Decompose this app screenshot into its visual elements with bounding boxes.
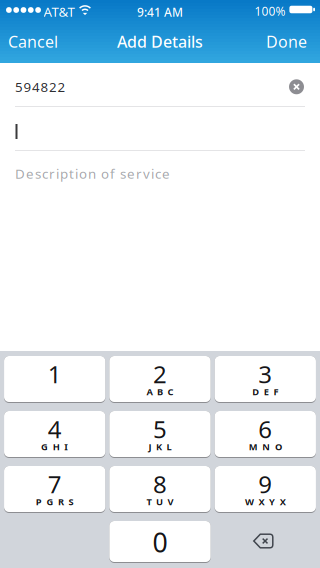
staticText: T [146,495,151,508]
staticText: X [258,495,264,508]
staticText: 4 [48,413,62,445]
staticText: D [252,385,259,398]
button[interactable]: Clear text [289,79,304,94]
staticText: Y [269,495,275,508]
staticText: 6 [258,413,272,445]
button[interactable]: 2 [109,356,211,403]
staticText: N [262,440,270,453]
button[interactable]: 5 [109,411,211,458]
staticText: R [58,495,64,508]
staticText: S [69,495,74,508]
staticText: 594822 [15,78,65,96]
staticText: 0 [152,524,167,560]
staticText: G [46,495,53,508]
button[interactable]: 1 [4,356,105,403]
staticText: C [168,385,174,398]
staticText: 2 [153,358,167,390]
staticText: V [168,495,174,508]
staticText: P [36,495,42,508]
staticText: G [41,440,48,453]
staticText: A [146,385,152,398]
staticText: K [156,440,162,453]
staticText: Done [266,31,307,52]
button[interactable]: 6 [215,411,316,458]
button[interactable]: 3 [215,356,316,403]
staticText: 5 [153,413,167,445]
staticText: M [249,440,258,453]
staticText: H [53,440,60,453]
staticText: Description of service [15,165,170,182]
button[interactable]: 7 [4,466,105,513]
staticText: B [157,385,163,398]
button[interactable]: Delete [215,521,316,563]
staticText: U [156,495,163,508]
staticText: 1 [48,358,62,390]
staticText: F [273,385,278,398]
staticText: E [264,385,269,398]
staticText: 9 [258,468,272,500]
button[interactable]: 9 [215,466,316,513]
staticText: Cancel [8,31,58,52]
staticText: J [148,440,151,453]
staticText: AT&T [43,3,74,20]
staticText: 100% [254,3,285,19]
staticText: 3 [258,358,272,390]
staticText: 8 [153,468,167,500]
staticText: L [167,440,172,453]
staticText: W [245,495,254,508]
staticText: X [280,495,286,508]
staticText: I [64,440,68,453]
staticText: 9:41 AM [137,4,183,20]
button[interactable]: 0 [109,521,211,563]
button[interactable]: Done [266,31,307,52]
staticText: Add Details [117,31,203,52]
staticText: 7 [48,468,62,500]
button[interactable]: 8 [109,466,211,513]
staticText: O [275,440,282,453]
button[interactable]: Cancel [8,31,58,52]
button[interactable]: 4 [4,411,105,458]
